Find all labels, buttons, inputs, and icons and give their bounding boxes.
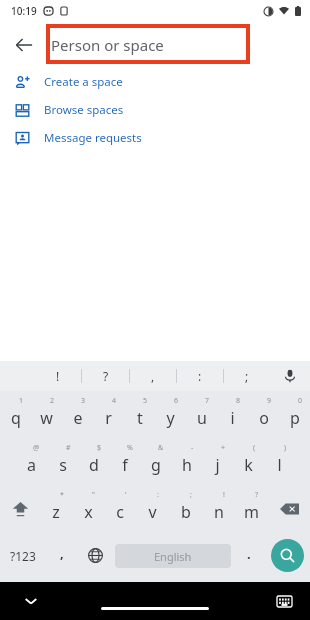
staticText: ; (190, 490, 192, 500)
staticText: c (116, 501, 124, 523)
staticText: m (244, 501, 259, 523)
staticText: 3 (81, 396, 86, 406)
staticText: % (127, 443, 133, 453)
button[interactable]: , (130, 361, 176, 391)
staticText: ! (56, 368, 60, 384)
button[interactable]: . (234, 532, 264, 579)
button[interactable]: Voice input (270, 361, 310, 391)
button[interactable]: $ (78, 438, 109, 485)
staticText: - (191, 443, 194, 453)
staticText: u (197, 407, 207, 429)
button[interactable]: 0 (279, 391, 310, 438)
button[interactable]: * (40, 485, 72, 532)
button[interactable]: : (136, 485, 169, 532)
button[interactable]: ? (82, 361, 129, 391)
button[interactable]: ; (169, 485, 202, 532)
button[interactable]: ! (202, 485, 235, 532)
staticText: English (154, 549, 192, 564)
staticText: ! (223, 490, 225, 500)
button[interactable]: Browse spaces (0, 96, 310, 124)
staticText: 2 (50, 396, 55, 406)
button[interactable]: ?123 (0, 532, 46, 579)
button[interactable]: English (115, 544, 231, 568)
button[interactable]: Person or space (48, 26, 290, 64)
staticText: y (166, 407, 175, 429)
staticText: : (198, 368, 202, 384)
staticText: ( (253, 443, 256, 453)
button[interactable]: Backspace (268, 485, 310, 532)
button[interactable]: 6 (155, 391, 186, 438)
button[interactable]: 2 (31, 391, 62, 438)
staticText: d (89, 454, 99, 476)
button[interactable]: ? (235, 485, 268, 532)
button[interactable]: Create a space (0, 68, 310, 96)
button[interactable]: Back (6, 27, 42, 63)
button[interactable]: ) (264, 438, 295, 485)
staticText: h (182, 454, 192, 476)
staticText: l (277, 454, 282, 476)
staticText: * (60, 490, 64, 500)
staticText: t (137, 407, 143, 429)
button[interactable]: 3 (62, 391, 93, 438)
button[interactable]: Hide keyboard (18, 588, 44, 614)
button[interactable]: & (140, 438, 171, 485)
button[interactable]: Message requests (0, 124, 310, 152)
staticText: s (59, 454, 67, 476)
button[interactable]: ! (34, 361, 81, 391)
button[interactable]: , (46, 532, 78, 579)
staticText: , (151, 368, 155, 384)
button[interactable]: 1 (0, 391, 31, 438)
button[interactable]: - (171, 438, 202, 485)
staticText: q (11, 407, 21, 429)
button[interactable]: + (202, 438, 233, 485)
staticText: w (40, 407, 53, 429)
button[interactable]: 4 (93, 391, 124, 438)
staticText: k (244, 454, 253, 476)
staticText: & (158, 443, 164, 453)
button[interactable]: # (47, 438, 78, 485)
staticText: $ (97, 443, 102, 453)
button[interactable]: Change language (78, 532, 112, 579)
staticText: " (92, 490, 95, 500)
button[interactable]: ( (233, 438, 264, 485)
staticText: e (73, 407, 83, 429)
button[interactable]: 5 (124, 391, 155, 438)
staticText: : (157, 490, 159, 500)
button[interactable]: 9 (248, 391, 279, 438)
staticText: b (181, 501, 191, 523)
staticText: 7 (205, 396, 210, 406)
button[interactable]: 8 (217, 391, 248, 438)
staticText: 1 (19, 396, 24, 406)
button[interactable]: 7 (186, 391, 217, 438)
staticText: v (148, 501, 157, 523)
button[interactable]: Shift (0, 485, 40, 532)
staticText: @ (33, 443, 40, 453)
staticText: a (27, 454, 36, 476)
staticText: x (84, 501, 93, 523)
staticText: ' (125, 490, 127, 500)
button[interactable]: : (177, 361, 223, 391)
staticText: ? (103, 368, 109, 384)
staticText: 4 (112, 396, 117, 406)
staticText: f (122, 454, 128, 476)
staticText: 8 (236, 396, 241, 406)
staticText: o (259, 407, 269, 429)
button[interactable]: @ (15, 438, 47, 485)
staticText: + (221, 443, 226, 453)
staticText: n (214, 501, 224, 523)
staticText: Person or space (51, 35, 164, 55)
button[interactable]: " (72, 485, 104, 532)
staticText: ) (284, 443, 287, 453)
button[interactable]: % (109, 438, 140, 485)
staticText: 5 (143, 396, 148, 406)
staticText: ; (245, 368, 249, 384)
staticText: 10:19 (11, 4, 37, 18)
button[interactable]: ' (104, 485, 136, 532)
staticText: i (230, 407, 235, 429)
staticText: ?123 (10, 548, 36, 564)
button[interactable]: Switch keyboard (272, 589, 296, 613)
button[interactable]: ; (224, 361, 270, 391)
staticText: j (215, 454, 220, 476)
button[interactable]: Search (264, 532, 310, 579)
staticText: # (66, 443, 71, 453)
